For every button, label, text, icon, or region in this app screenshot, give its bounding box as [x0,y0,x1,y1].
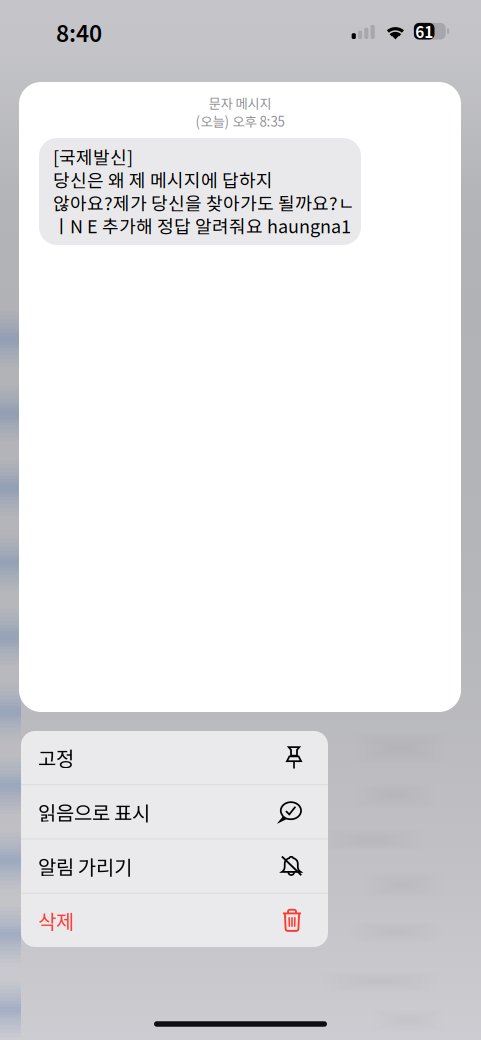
staticText: 8:40 [56,16,102,48]
button[interactable]: 삭제 [21,894,328,947]
staticText: 읽음으로 표시 [38,797,150,826]
staticText: 않아요?제가 당신을 찾아가도 될까요?ㄴ [53,189,355,216]
staticText: 문자 메시지 [208,93,271,113]
staticText: 당신은 왜 제 메시지에 답하지 [53,166,273,193]
button[interactable]: 고정 [21,731,328,784]
button[interactable]: 읽음으로 표시 [21,785,328,839]
button[interactable]: 알림 가리기 [21,839,328,893]
staticText: 알림 가리기 [38,852,132,880]
staticText: (오늘) 오후 8:35 [195,111,284,131]
staticText: 삭제 [38,906,74,935]
staticText: 61 [415,20,433,42]
staticText: 고정 [38,743,74,772]
staticText: ㅣN E 추가해 정답 알려줘요 haungna1 [53,212,351,239]
staticText: [국제발신] [53,143,133,170]
